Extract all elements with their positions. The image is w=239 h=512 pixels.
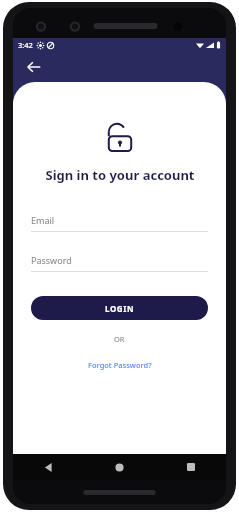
button[interactable]: Recents — [155, 454, 226, 480]
button[interactable]: Back — [21, 54, 47, 80]
button[interactable]: Password — [31, 254, 208, 272]
staticText: Forgot Password? — [88, 360, 152, 370]
button[interactable]: Home — [84, 454, 155, 480]
button[interactable]: Email — [31, 214, 208, 232]
staticText: 3:42 — [18, 40, 33, 50]
staticText: Email — [31, 214, 55, 226]
button[interactable]: Back — [13, 454, 84, 480]
button[interactable]: LOGIN — [31, 296, 208, 320]
staticText: Sign in to your account — [45, 166, 195, 184]
staticText: OR — [114, 334, 125, 344]
button[interactable]: Forgot Password? — [84, 358, 156, 372]
staticText: LOGIN — [105, 303, 135, 314]
staticText: Password — [31, 254, 72, 266]
